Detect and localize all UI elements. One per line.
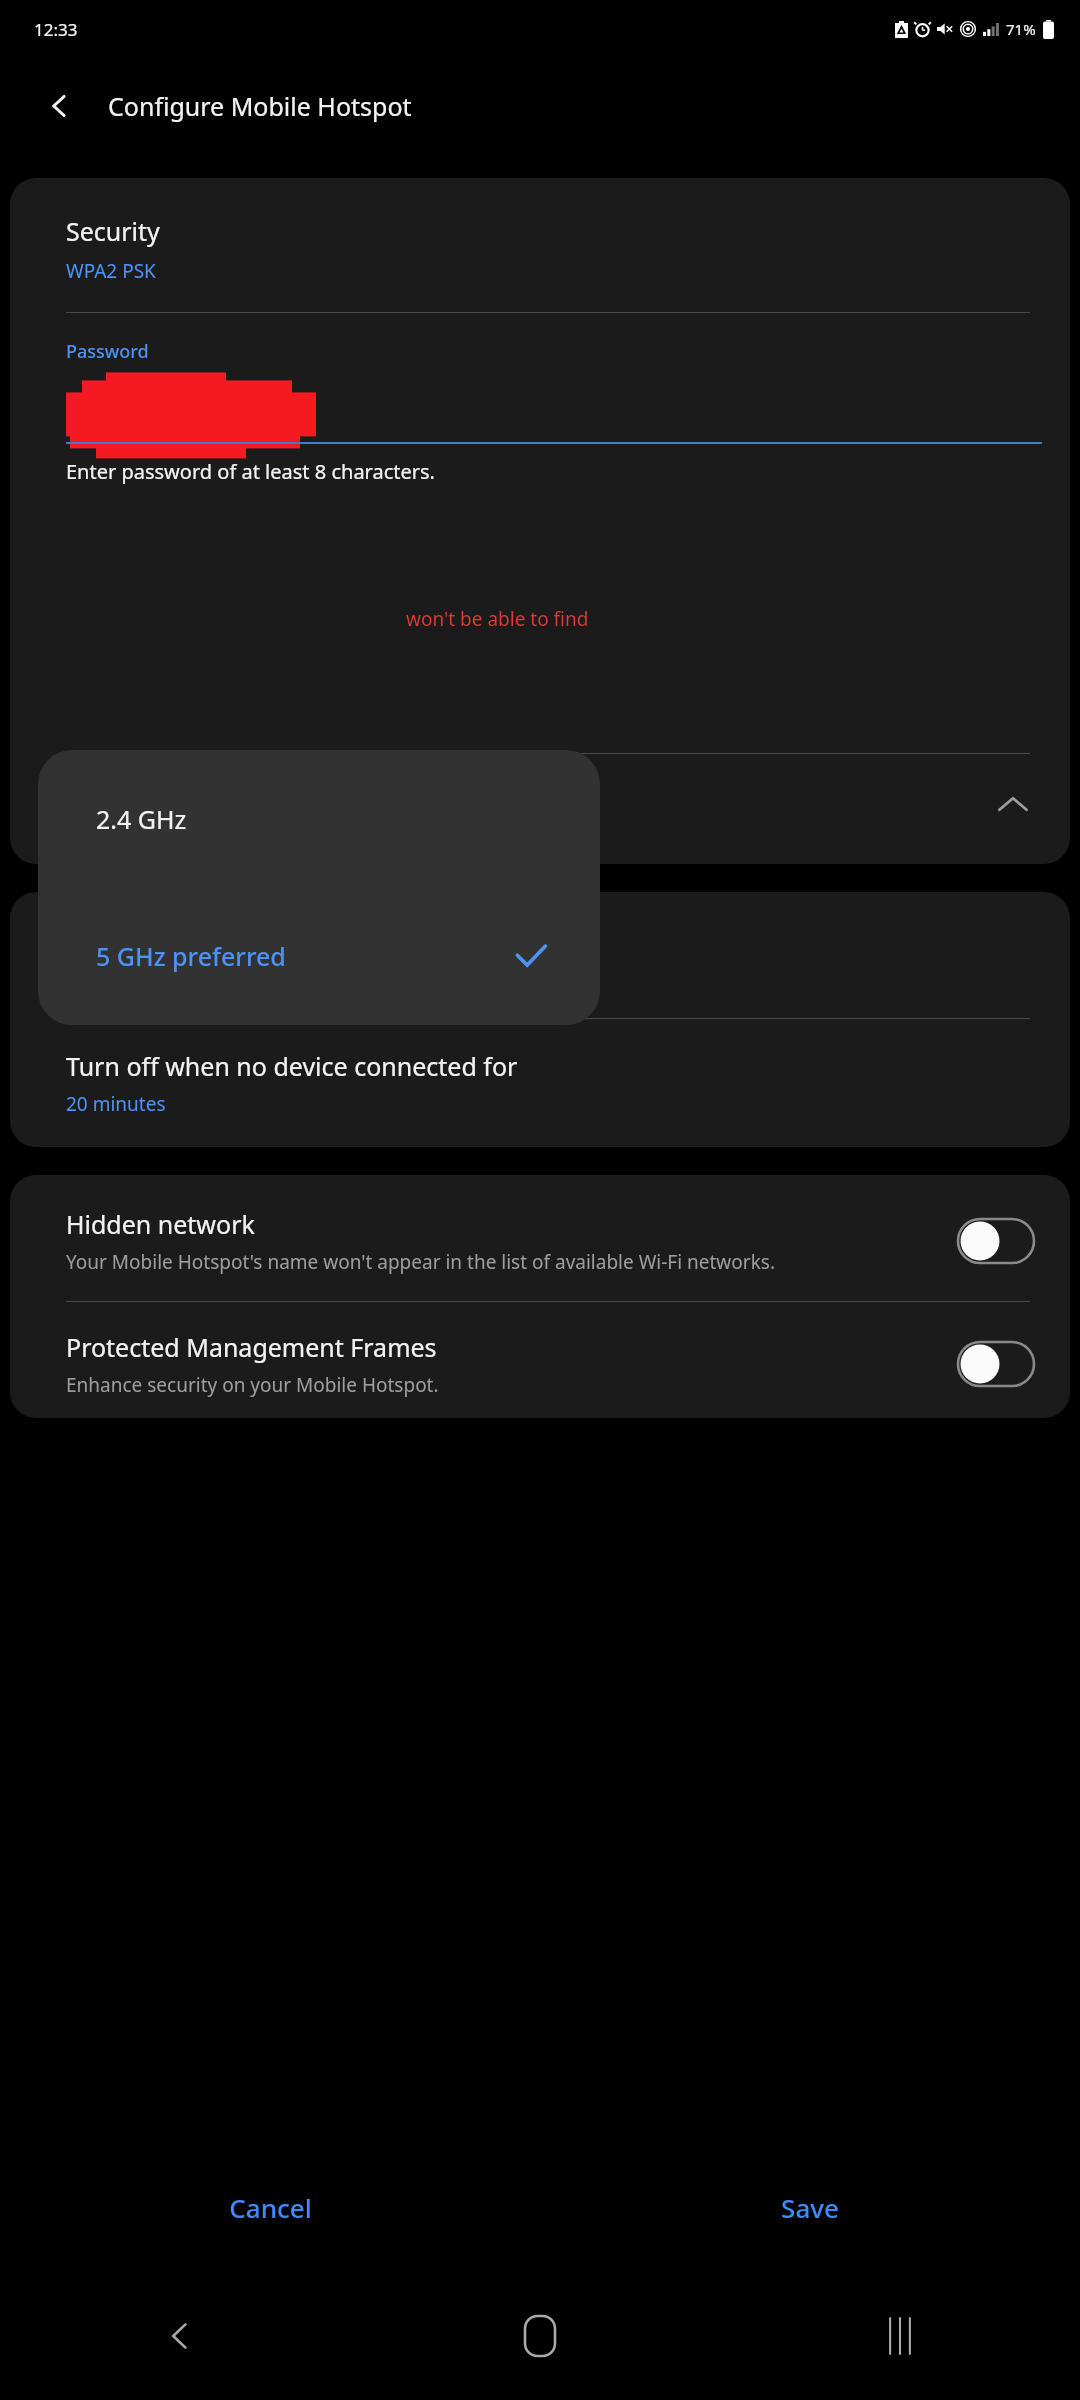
button[interactable]: Save [540,2142,1080,2272]
button[interactable]: Toggle off [958,1342,1034,1386]
button[interactable]: Cancel [0,2142,540,2272]
staticText: Turn off when no device connected for [66,1049,518,1083]
staticText: Password [66,339,149,364]
staticText: Randomised MAC [66,966,224,992]
staticText: Configure Mobile Hotspot [108,89,412,123]
staticText: Protected Management Frames [66,1330,437,1364]
staticText: Save [781,2190,839,2225]
button[interactable]: 2.4 GHz [38,750,600,887]
staticText: Your Mobile Hotspot's name won't appear … [66,1249,775,1275]
button[interactable]: Back [34,80,86,132]
staticText: Enter password of at least 8 characters. [66,458,435,485]
button[interactable]: Protected Management Frames [10,1302,1070,1418]
staticText: WPA2 PSK [66,258,156,284]
button[interactable]: 5 GHz preferred [38,887,600,1025]
button[interactable]: Toggle off [958,1219,1034,1263]
staticText: Security [66,214,160,248]
staticText: 71% [1006,19,1036,39]
staticText: Enhance security on your Mobile Hotspot. [66,1372,439,1398]
button[interactable]: Home [360,2272,720,2400]
staticText: MAC address type [66,924,277,958]
staticText: Hidden network [66,1207,255,1241]
staticText: 20 minutes [66,1091,166,1117]
staticText: 5 GHz preferred [96,939,286,973]
staticText: Advanced [66,788,182,822]
button[interactable]: Recents [720,2272,1080,2400]
button[interactable]: Back [0,2272,360,2400]
staticText: 2.4 GHz [96,802,187,836]
button[interactable]: Security [10,178,1070,312]
button[interactable]: Hidden network [10,1175,1070,1301]
button[interactable]: Advanced [10,754,1070,864]
staticText: won't be able to find [406,606,589,632]
button[interactable]: MAC address type [10,892,1070,1018]
button[interactable]: Turn off when no device connected for [10,1019,1070,1147]
staticText: 12:33 [34,18,78,41]
staticText: Cancel [229,2190,312,2225]
